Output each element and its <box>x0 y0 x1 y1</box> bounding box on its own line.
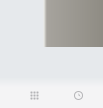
button[interactable]: Grid <box>21 82 47 108</box>
button[interactable]: Recents <box>65 82 91 108</box>
